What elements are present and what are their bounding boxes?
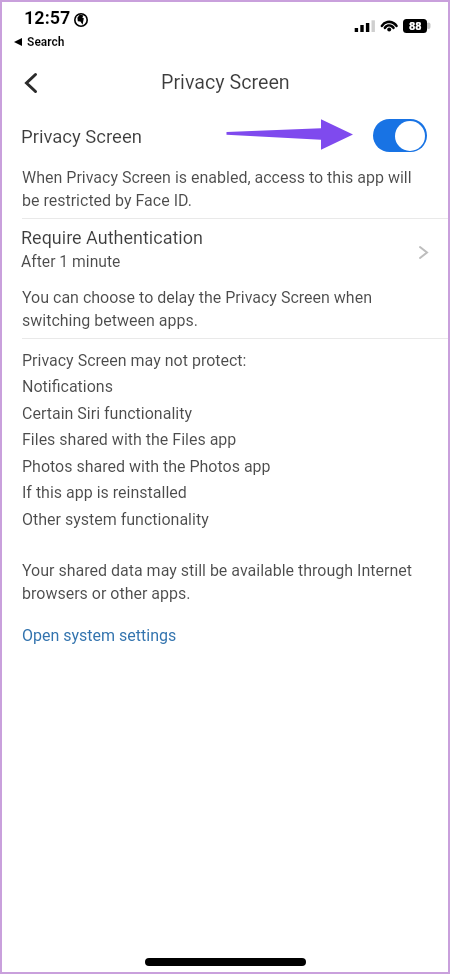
staticText: Privacy Screen (21, 126, 142, 148)
button[interactable]: Privacy Screen toggle (373, 119, 427, 152)
button[interactable]: Require Authentication (0, 219, 450, 274)
staticText: Files shared with the Files app (22, 430, 237, 449)
staticText: When Privacy Screen is enabled, access t… (22, 168, 412, 210)
staticText: Your shared data may still be available … (22, 561, 412, 603)
button[interactable]: Open system settings (0, 624, 199, 647)
button[interactable]: Privacy Screen (0, 109, 450, 159)
staticText: After 1 minute (21, 252, 121, 270)
staticText: Privacy Screen (161, 71, 290, 94)
staticText: You can choose to delay the Privacy Scre… (22, 288, 372, 330)
staticText: 12:57 (24, 7, 71, 28)
button[interactable]: Back (9, 61, 52, 105)
staticText: Certain Siri functionality (22, 404, 192, 423)
staticText: Open system settings (22, 626, 177, 645)
staticText: Privacy Screen may not protect: (22, 351, 247, 370)
staticText: Require Authentication (21, 227, 203, 248)
staticText: 88 (409, 20, 422, 33)
staticText: If this app is reinstalled (22, 483, 187, 502)
staticText: Notifications (22, 377, 113, 396)
staticText: Other system functionality (22, 510, 209, 529)
staticText: Search (27, 35, 65, 49)
staticText: Photos shared with the Photos app (22, 457, 271, 476)
